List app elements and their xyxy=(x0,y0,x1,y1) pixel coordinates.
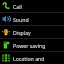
staticText: Power saving xyxy=(13,42,46,49)
button[interactable]: Power saving xyxy=(0,39,64,51)
staticText: Sound xyxy=(13,16,29,23)
staticText: Display xyxy=(13,29,31,36)
button[interactable]: Display xyxy=(0,26,64,38)
staticText: Location and security xyxy=(13,55,64,62)
button[interactable]: Call xyxy=(0,0,64,12)
button[interactable]: Location and security xyxy=(0,52,64,64)
button[interactable]: Sound xyxy=(0,13,64,25)
staticText: Call xyxy=(13,3,22,10)
